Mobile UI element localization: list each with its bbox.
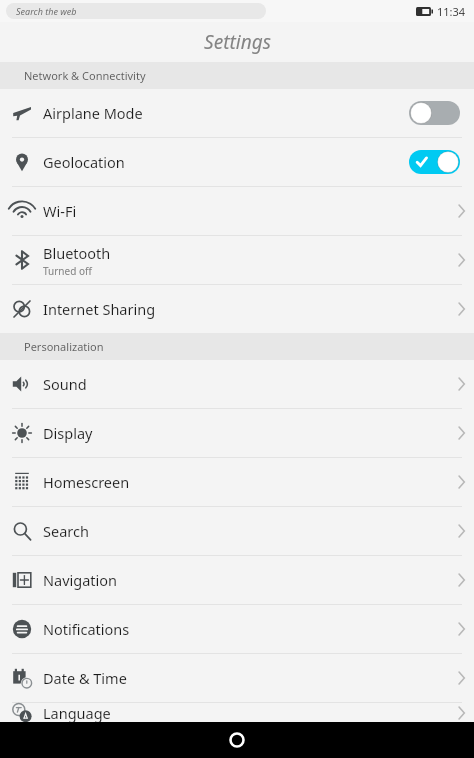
button[interactable]: Geolocation bbox=[0, 138, 474, 186]
button[interactable]: Navigation bbox=[0, 556, 474, 604]
button[interactable]: Language bbox=[0, 703, 474, 722]
staticText: Search bbox=[43, 521, 89, 541]
button[interactable]: Homescreen bbox=[0, 458, 474, 506]
button[interactable]: Airplane Mode bbox=[0, 89, 474, 137]
staticText: Turned off bbox=[43, 264, 92, 278]
staticText: Notifications bbox=[43, 619, 130, 639]
button[interactable]: Bluetooth bbox=[0, 236, 474, 284]
staticText: 11:34 bbox=[437, 4, 466, 19]
button[interactable]: Display bbox=[0, 409, 474, 457]
staticText: Internet Sharing bbox=[43, 299, 156, 319]
staticText: Homescreen bbox=[43, 472, 130, 492]
button[interactable]: Internet Sharing bbox=[0, 285, 474, 333]
button[interactable]: Notifications bbox=[0, 605, 474, 653]
staticText: Bluetooth bbox=[43, 243, 111, 263]
staticText: Airplane Mode bbox=[43, 103, 409, 123]
staticText: Navigation bbox=[43, 570, 118, 590]
button[interactable]: Date & Time bbox=[0, 654, 474, 702]
staticText: Display bbox=[43, 423, 93, 443]
staticText: Search the web bbox=[16, 5, 77, 17]
button[interactable]: Wi-Fi bbox=[0, 187, 474, 235]
staticText: Date & Time bbox=[43, 668, 127, 688]
staticText: Personalization bbox=[24, 339, 104, 354]
button[interactable]: Search the web bbox=[6, 3, 266, 19]
staticText: Network & Connectivity bbox=[24, 68, 146, 83]
other: Airplane Mode bbox=[409, 101, 460, 125]
staticText: Geolocation bbox=[43, 152, 409, 172]
staticText: Sound bbox=[43, 374, 87, 394]
other: Geolocation bbox=[409, 150, 460, 174]
staticText: Language bbox=[43, 703, 111, 722]
staticText: Settings bbox=[204, 29, 271, 55]
staticText: Wi-Fi bbox=[43, 201, 77, 221]
button[interactable]: Search bbox=[0, 507, 474, 555]
button[interactable]: Home bbox=[222, 725, 252, 755]
button[interactable]: Sound bbox=[0, 360, 474, 408]
